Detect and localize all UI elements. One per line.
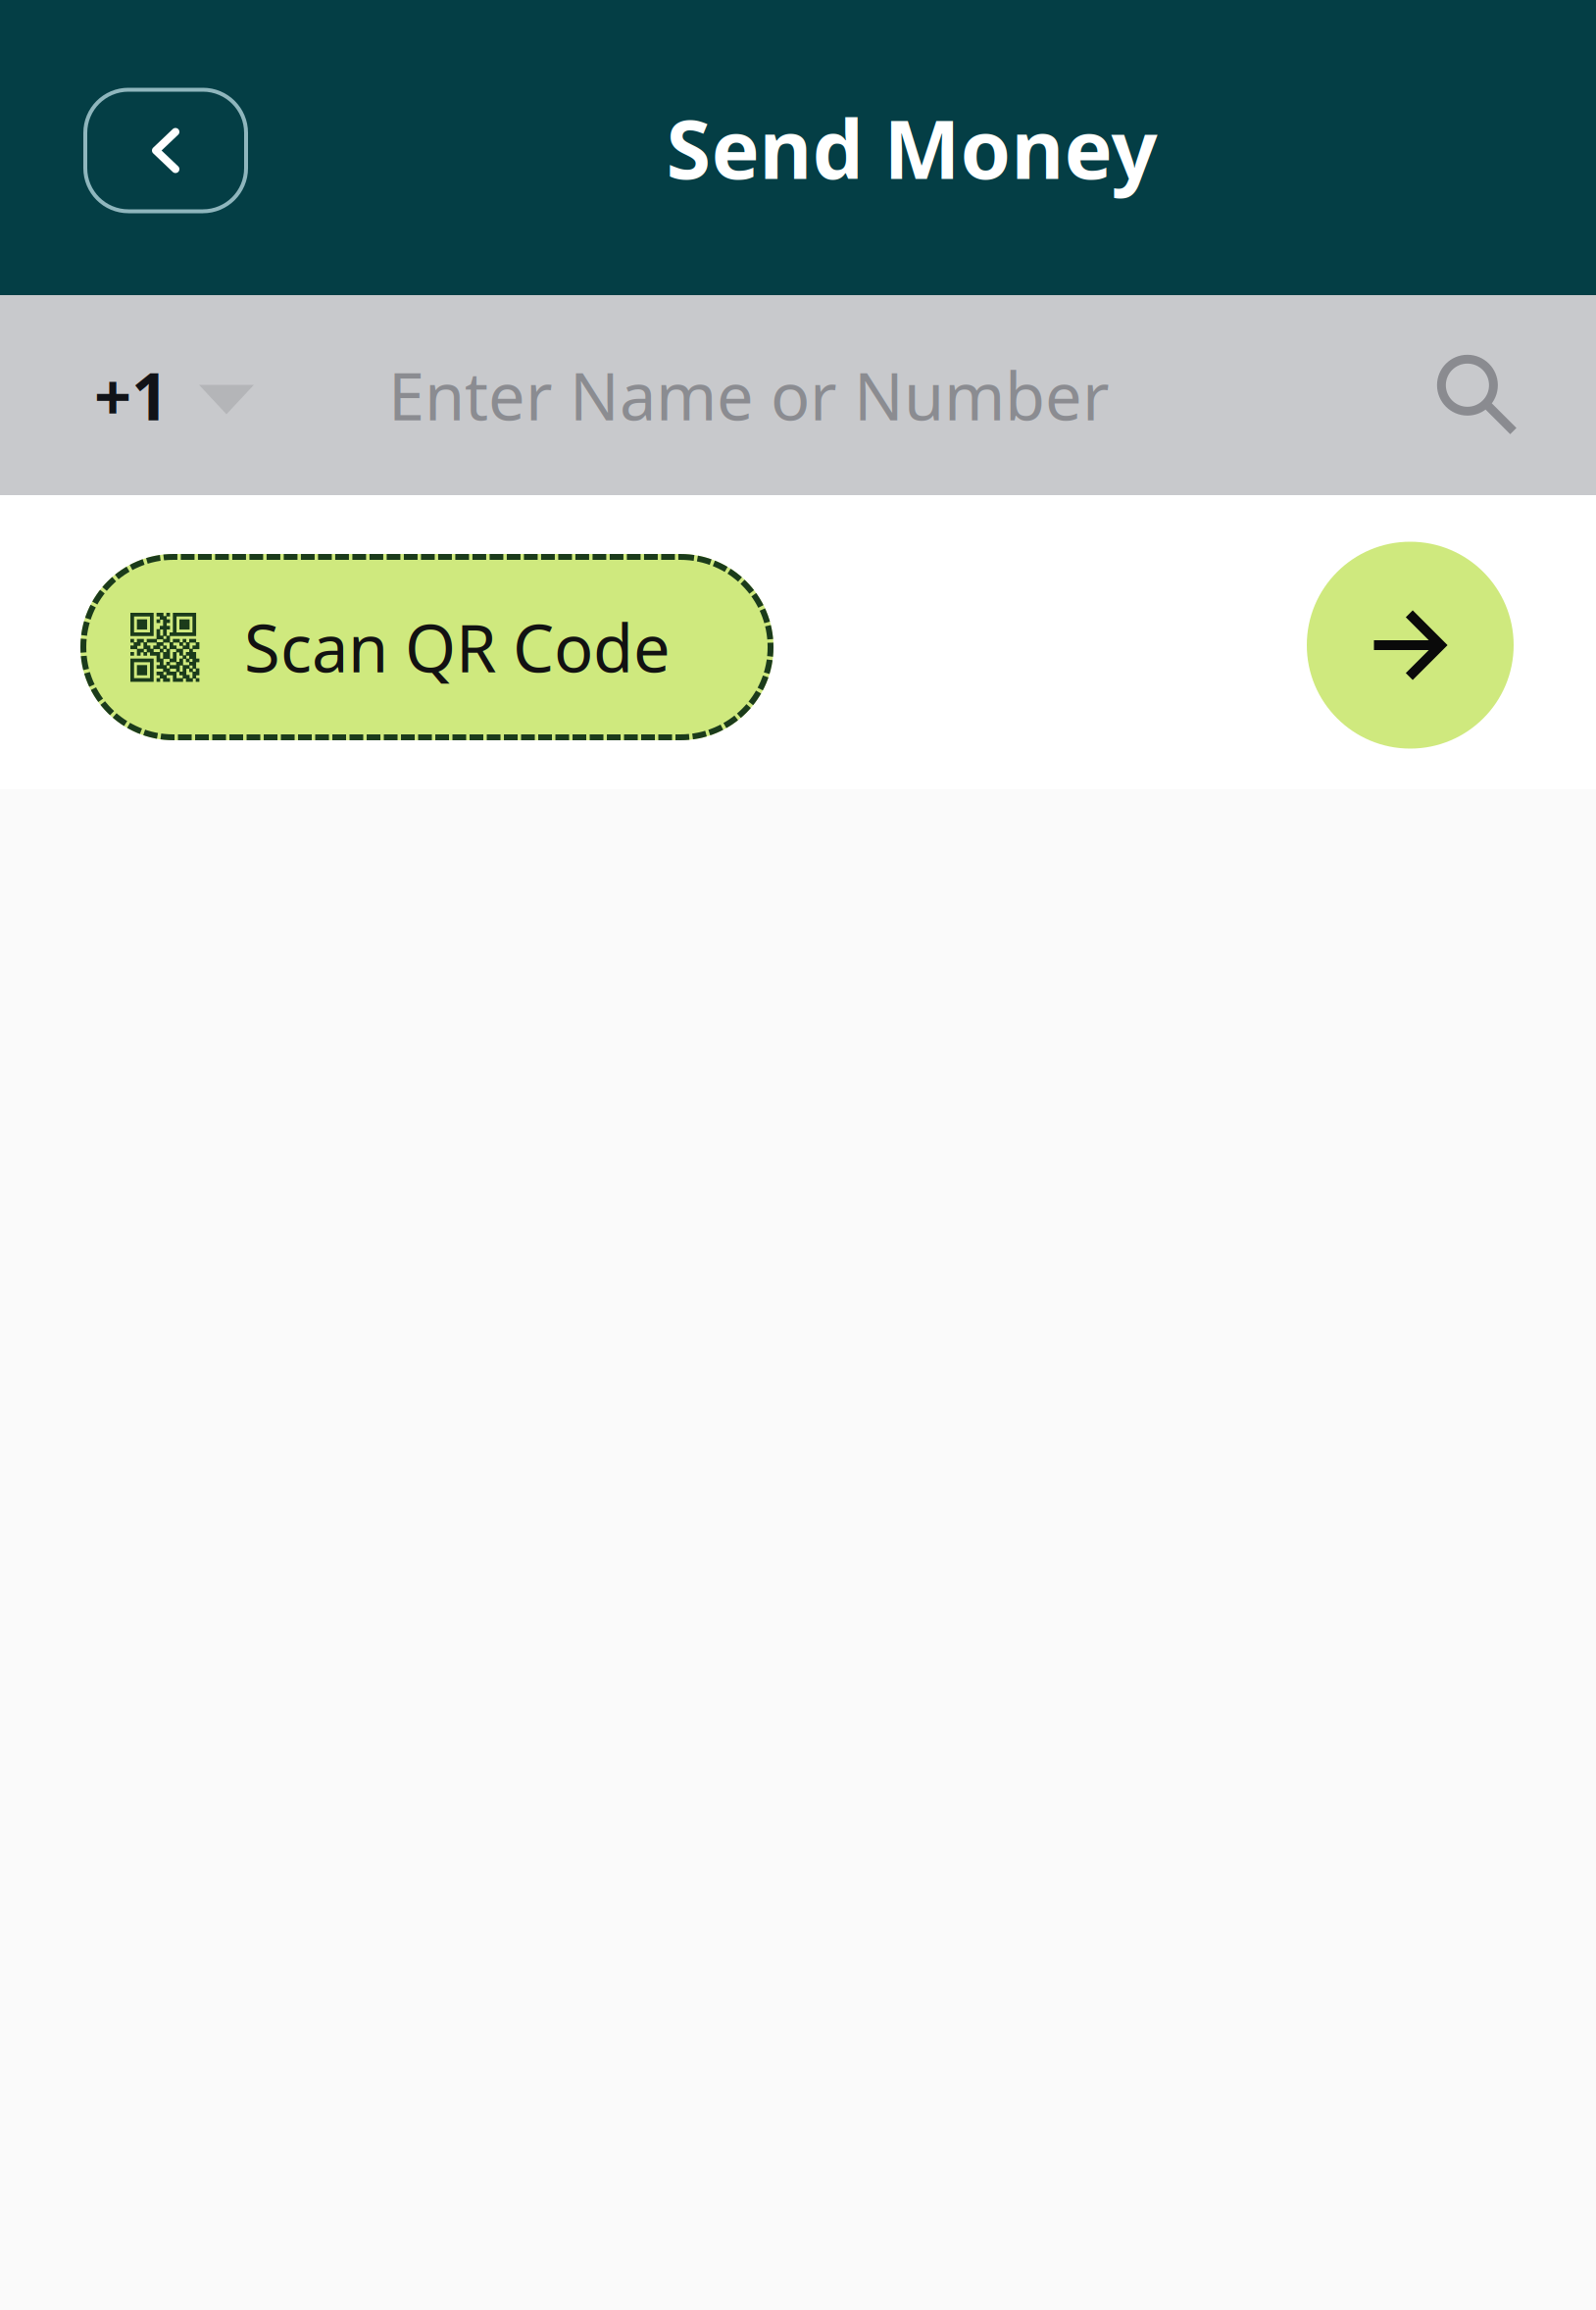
- button[interactable]: Search: [1439, 295, 1596, 495]
- staticText: +1: [94, 352, 169, 438]
- button[interactable]: Continue: [1307, 536, 1514, 749]
- staticText: Enter Name or Number: [388, 352, 1110, 438]
- staticText: Send Money: [666, 94, 1157, 201]
- button[interactable]: Back: [83, 82, 248, 213]
- button[interactable]: Enter Name or Number: [293, 295, 1439, 495]
- button[interactable]: Scan QR Code: [80, 544, 773, 740]
- button[interactable]: Country code +1: [0, 295, 293, 495]
- staticText: Scan QR Code: [244, 604, 671, 690]
